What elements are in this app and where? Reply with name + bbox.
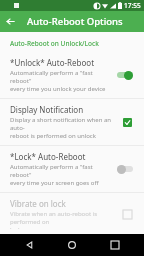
button[interactable]: Back [0,11,21,32]
button[interactable]: Recent apps [102,234,128,256]
button[interactable]: Toggle on [114,68,136,82]
staticText: Auto-Reboot on Unlock/Lock [10,39,99,48]
staticText: *Lock* Auto-Reboot [10,151,86,162]
button[interactable]: Unchecked [118,205,136,223]
button[interactable]: Back [17,234,43,256]
staticText: Auto-Reboot Options [27,15,123,28]
staticText: Automatically perform a "fast reboot" ev… [10,163,108,187]
button[interactable]: Display Notification [0,99,144,145]
button[interactable]: Toggle off [114,162,136,176]
staticText: Display Notification [10,104,84,115]
staticText: *Unlock* Auto-Reboot [10,57,95,68]
button[interactable]: Vibrate on lock [0,193,144,234]
staticText: Vibrate when an auto-reboot is performed… [10,210,112,229]
button[interactable]: Checked [118,113,136,131]
staticText: Vibrate on lock [10,198,66,209]
staticText: Display a short notification when an aut… [10,116,112,140]
staticText: 17:55 [124,1,141,10]
staticText: Automatically perform a "fast reboot" ev… [10,69,108,93]
button[interactable]: *Unlock* Auto-Reboot [0,52,144,98]
button[interactable]: Home [59,234,85,256]
button[interactable]: *Lock* Auto-Reboot [0,146,144,192]
